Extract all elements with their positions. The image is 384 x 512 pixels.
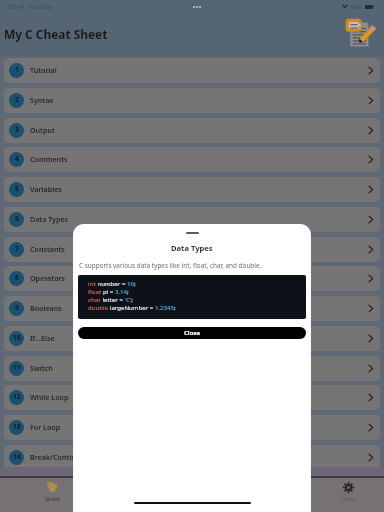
staticText: While Loop	[30, 392, 69, 402]
staticText: C supports various data types like int, …	[79, 261, 262, 270]
button[interactable]: 5	[4, 177, 380, 202]
staticText: 11	[13, 363, 21, 372]
staticText: 13	[13, 422, 21, 431]
button[interactable]: 8	[4, 266, 380, 291]
staticText: My C Cheat Sheet	[4, 26, 108, 42]
staticText: 4	[15, 154, 19, 163]
staticText: Output	[30, 125, 55, 135]
staticText: 2	[15, 95, 19, 104]
staticText: For Loop	[30, 422, 61, 432]
staticText: Tutorial	[30, 65, 57, 75]
button[interactable]: 6	[4, 207, 380, 232]
button[interactable]: App logo	[342, 16, 378, 52]
staticText: char letter = 'C';	[88, 295, 133, 303]
staticText: 1	[15, 65, 19, 74]
button[interactable]: Tools	[312, 478, 384, 512]
staticText: Close	[184, 329, 200, 337]
button[interactable]: 4	[4, 147, 380, 172]
button[interactable]: 13	[4, 415, 380, 440]
button[interactable]: 11	[4, 356, 380, 381]
staticText: double largeNumber = 1.2345;	[88, 303, 176, 311]
staticText: Operators	[30, 273, 66, 283]
staticText: Comments	[30, 154, 68, 164]
staticText: Constants	[30, 244, 65, 254]
staticText: Booleans	[30, 303, 62, 313]
button[interactable]: Close	[78, 327, 306, 339]
staticText: 7	[15, 244, 19, 253]
staticText: int number = 10;	[88, 279, 136, 287]
staticText: 5	[15, 184, 19, 193]
staticText: Variables	[30, 184, 62, 194]
staticText: 8	[15, 273, 19, 282]
staticText: 5:27 PM Sun 22 Sep	[7, 4, 52, 10]
button[interactable]: Sheet	[0, 478, 104, 512]
staticText: Break/Continue	[30, 452, 85, 462]
staticText: Data Types	[171, 243, 213, 253]
button[interactable]: 2	[4, 88, 380, 113]
staticText: 14	[13, 452, 21, 461]
staticText: 9	[15, 303, 19, 312]
staticText: 6	[15, 214, 19, 223]
staticText: Syntax	[30, 95, 54, 105]
staticText: 12	[13, 392, 21, 401]
button[interactable]: 3	[4, 118, 380, 143]
staticText: Sheet	[45, 495, 60, 503]
staticText: 10	[13, 333, 21, 342]
button[interactable]: 1	[4, 58, 380, 83]
staticText: float pi = 3.14;	[88, 287, 129, 295]
staticText: Switch	[30, 363, 53, 373]
button[interactable]: 7	[4, 237, 380, 262]
staticText: 3	[15, 125, 19, 134]
button[interactable]: 9	[4, 296, 380, 321]
staticText: Tools	[341, 495, 355, 503]
button[interactable]: 14	[4, 445, 380, 470]
staticText: Data Types	[30, 214, 69, 224]
button[interactable]: 12	[4, 385, 380, 410]
staticText: 100%	[350, 4, 362, 10]
staticText: If...Else	[30, 333, 55, 343]
button[interactable]: 10	[4, 326, 380, 351]
